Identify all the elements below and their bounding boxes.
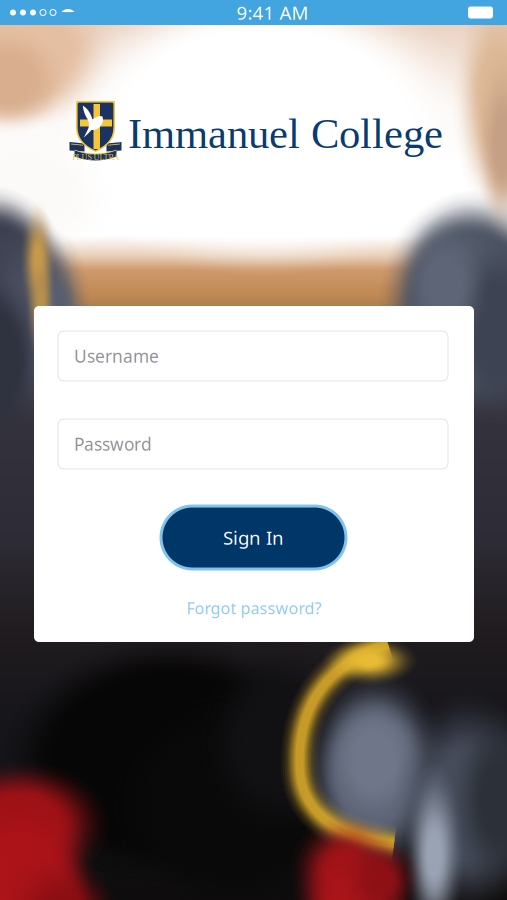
staticText: 9:41 AM xyxy=(236,0,308,25)
staticText: PLUS ULTRA xyxy=(72,153,119,162)
staticText: Immanuel College xyxy=(128,110,443,157)
staticText: Sign In xyxy=(223,525,284,550)
button[interactable]: Password xyxy=(58,419,448,469)
button[interactable]: Forgot password? xyxy=(154,593,354,623)
staticText: Forgot password? xyxy=(186,597,321,619)
button[interactable]: Sign In xyxy=(161,506,346,569)
staticText: Password xyxy=(74,432,152,455)
staticText: Username xyxy=(74,344,159,367)
button[interactable]: Username xyxy=(58,331,448,381)
